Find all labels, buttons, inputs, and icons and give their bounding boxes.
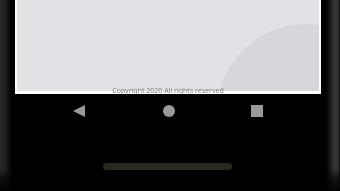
button[interactable]: Back (63, 95, 95, 127)
staticText: Copyright 2020 All rights reserved (112, 86, 224, 96)
button[interactable]: Home (153, 95, 185, 127)
button[interactable]: Recents (241, 95, 273, 127)
